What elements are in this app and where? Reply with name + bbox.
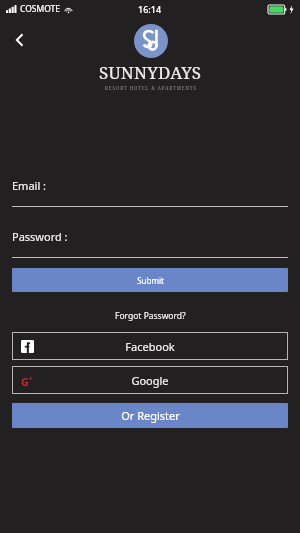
staticText: SUNNYDAYS <box>99 61 202 84</box>
button[interactable]: Forgot Password? <box>115 310 186 322</box>
staticText: G <box>21 374 29 387</box>
staticText: Password : <box>12 229 68 244</box>
staticText: Facebook <box>125 339 175 354</box>
staticText: Submit <box>137 275 164 286</box>
button[interactable]: Or Register <box>12 403 288 428</box>
staticText: 16:14 <box>138 3 162 15</box>
staticText: Google <box>131 373 169 388</box>
button[interactable]: Submit <box>12 268 288 292</box>
staticText: + <box>29 374 33 383</box>
button[interactable]: G <box>12 366 288 394</box>
staticText: Or Register <box>121 408 180 423</box>
staticText: Forgot Password? <box>115 310 186 322</box>
staticText: COSMOTE <box>20 3 61 15</box>
button[interactable]: Facebook <box>12 332 288 360</box>
button[interactable]: Back <box>4 24 36 56</box>
staticText: Email : <box>12 178 47 193</box>
staticText: RESORT HOTEL & APARTMENTS <box>105 85 197 91</box>
